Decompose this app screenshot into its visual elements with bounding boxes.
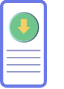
button[interactable]: Download	[9, 13, 38, 42]
button[interactable]: Document content	[6, 48, 41, 74]
